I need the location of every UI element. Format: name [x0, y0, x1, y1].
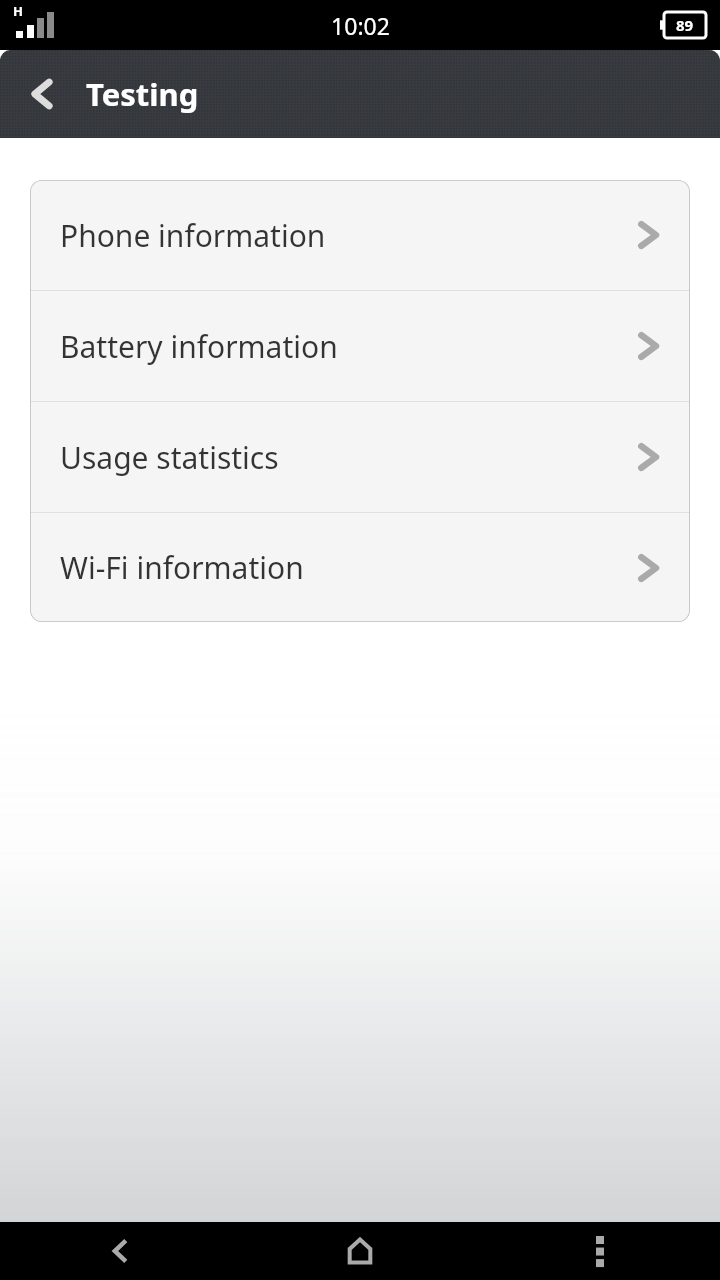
staticText: Phone information: [60, 215, 638, 256]
button[interactable]: Battery information: [30, 291, 690, 401]
staticText: 10:02: [331, 10, 390, 41]
staticText: 89: [676, 15, 694, 35]
button[interactable]: Usage statistics: [30, 402, 690, 512]
button[interactable]: More options: [480, 1222, 720, 1280]
staticText: H: [13, 2, 23, 20]
button[interactable]: Back: [0, 50, 86, 138]
staticText: Wi-Fi information: [60, 547, 638, 588]
button[interactable]: Home: [240, 1222, 480, 1280]
staticText: Battery information: [60, 326, 638, 367]
staticText: Testing: [86, 73, 199, 115]
staticText: Usage statistics: [60, 437, 638, 478]
button[interactable]: Back: [0, 1222, 240, 1280]
button[interactable]: Phone information: [30, 180, 690, 290]
button[interactable]: Wi-Fi information: [30, 513, 690, 622]
